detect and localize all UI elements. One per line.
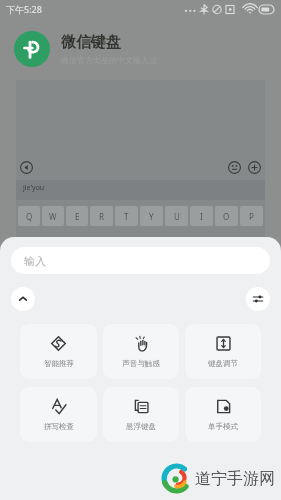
staticText: 拼写检查 <box>44 422 74 431</box>
button[interactable]: 智能推荐 <box>20 324 97 379</box>
staticText: Y <box>149 211 154 222</box>
staticText: I <box>200 211 203 222</box>
staticText: 微信官方出品的中文输入法 <box>61 55 157 65</box>
staticText: R <box>99 211 104 222</box>
staticText: T <box>124 211 129 222</box>
staticText: E <box>75 211 80 222</box>
staticText: 道宁手游网 <box>195 469 275 489</box>
staticText: O <box>223 211 230 222</box>
staticText: Q <box>26 211 33 222</box>
staticText: 悬浮键盘 <box>126 422 156 431</box>
staticText: 单手模式 <box>208 422 238 431</box>
button[interactable]: 悬浮键盘 <box>103 387 179 442</box>
staticText: P <box>249 211 254 222</box>
button[interactable]: 单手模式 <box>185 387 261 442</box>
staticText: 智能推荐 <box>44 359 74 368</box>
staticText: U <box>174 211 180 222</box>
button[interactable]: 键盘调节 <box>185 324 261 379</box>
button[interactable]: Collapse <box>11 287 35 311</box>
staticText: jie'you <box>23 183 45 193</box>
staticText: 微信键盘 <box>61 33 121 52</box>
staticText: 键盘调节 <box>208 359 238 368</box>
button[interactable]: 输入 <box>11 247 270 274</box>
button[interactable]: Settings <box>246 287 270 311</box>
staticText: 下午5:28 <box>6 3 42 15</box>
staticText: W <box>49 211 57 222</box>
button[interactable]: 声音与触感 <box>103 324 179 379</box>
staticText: 声音与触感 <box>122 359 160 368</box>
button[interactable]: 拼写检查 <box>20 387 97 442</box>
staticText: 输入 <box>24 254 46 268</box>
